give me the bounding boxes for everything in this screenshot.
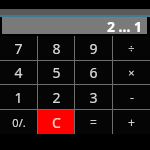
button[interactable]: ÷ [113,36,150,60]
staticText: 5 [52,63,61,82]
button[interactable]: + [113,110,150,134]
staticText: 8 [52,39,61,58]
button[interactable]: 8 [38,36,74,60]
staticText: 3 [89,88,98,107]
button[interactable]: - [113,85,150,109]
button[interactable]: 0/. [0,110,37,134]
staticText: 2 [52,88,61,107]
button[interactable]: 9 [75,36,112,60]
button[interactable]: 5 [38,61,74,84]
button[interactable]: 7 [0,36,37,60]
button[interactable]: 6 [75,61,112,84]
staticText: 2 ... 1 [106,17,142,34]
staticText: ÷ [128,41,135,56]
staticText: 9 [89,39,98,58]
staticText: 0/. [12,115,26,130]
staticText: 4 [14,63,23,82]
button[interactable]: 3 [75,85,112,109]
staticText: 6 [89,63,98,82]
button[interactable]: = [75,110,112,134]
staticText: - [130,89,134,105]
staticText: + [128,114,135,130]
button[interactable]: 2 [38,85,74,109]
staticText: 7 [14,39,23,58]
staticText: = [90,114,97,130]
staticText: × [128,65,135,80]
staticText: C [52,113,61,132]
staticText: 1 [14,88,23,107]
button[interactable]: 1 [0,85,37,109]
button[interactable]: × [113,61,150,84]
button[interactable]: C [38,110,74,134]
button[interactable]: 4 [0,61,37,84]
button[interactable]: 2 ... 1 [2,17,147,34]
